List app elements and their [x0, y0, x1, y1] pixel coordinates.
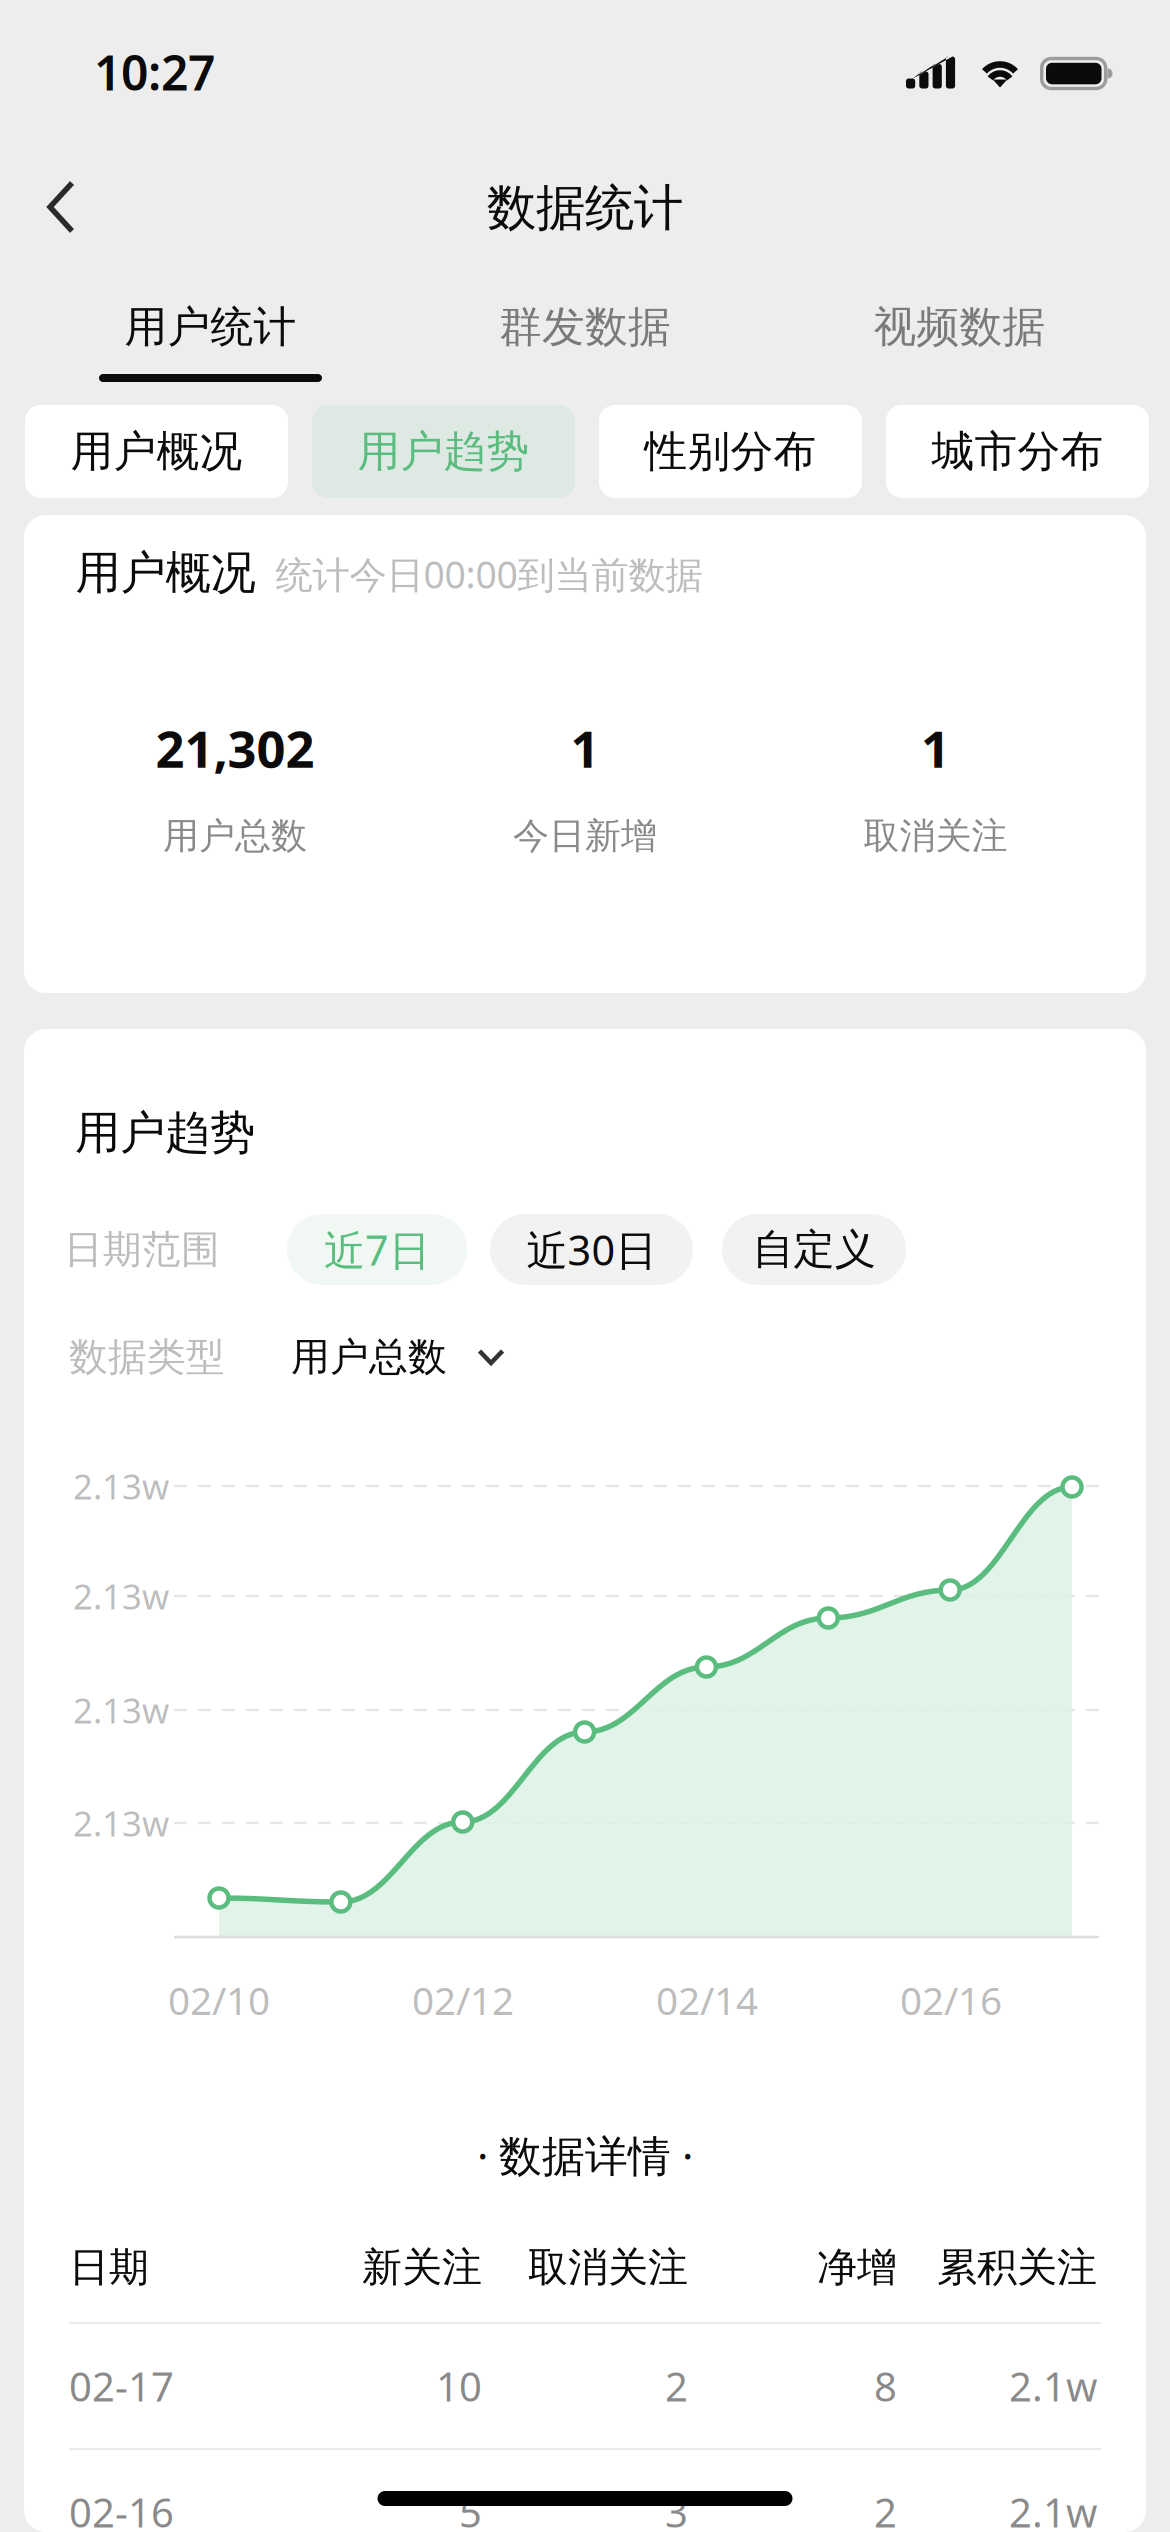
staticText: 性别分布: [644, 425, 816, 478]
staticText: 净增: [817, 2243, 897, 2292]
staticText: 2.1w: [1009, 2359, 1097, 2412]
button[interactable]: 用户总数: [291, 1329, 505, 1385]
staticText: 2.1w: [1009, 2485, 1097, 2532]
staticText: 02-17: [69, 2359, 174, 2412]
staticText: 2.13w: [73, 1800, 169, 1846]
staticText: 用户趋势: [75, 1105, 255, 1161]
staticText: 城市分布: [931, 425, 1103, 478]
staticText: 21,302: [155, 714, 314, 782]
staticText: 取消关注: [863, 814, 1007, 858]
staticText: 近30日: [526, 1222, 656, 1277]
staticText: 2.13w: [73, 1573, 169, 1619]
staticText: 1: [921, 714, 950, 782]
staticText: 3: [665, 2485, 688, 2532]
staticText: 日期: [69, 2243, 149, 2292]
staticText: 10: [436, 2359, 482, 2412]
button[interactable]: Back: [0, 144, 110, 256]
button[interactable]: 性别分布: [599, 405, 862, 498]
button[interactable]: 自定义: [722, 1214, 906, 1285]
staticText: 用户趋势: [357, 425, 529, 478]
staticText: 10:27: [94, 40, 215, 104]
staticText: 2: [665, 2359, 688, 2412]
staticText: 02/12: [412, 1974, 514, 2026]
staticText: 日期范围: [64, 1226, 220, 1273]
button[interactable]: 用户概况: [25, 405, 288, 498]
button[interactable]: 群发数据: [421, 256, 749, 400]
staticText: 群发数据: [499, 301, 671, 353]
staticText: 用户统计: [124, 301, 296, 353]
staticText: 统计今日00:00到当前数据: [275, 549, 702, 599]
button[interactable]: 用户趋势: [312, 405, 575, 498]
staticText: 近7日: [324, 1222, 430, 1277]
button[interactable]: 用户统计: [0, 256, 421, 400]
button[interactable]: 近30日: [490, 1214, 693, 1285]
staticText: 用户概况: [75, 545, 255, 601]
staticText: 用户概况: [70, 425, 242, 478]
staticText: 02/14: [656, 1974, 758, 2026]
staticText: 02/16: [900, 1974, 1002, 2026]
staticText: 02-16: [69, 2485, 174, 2532]
staticText: 视频数据: [873, 301, 1045, 353]
staticText: · 数据详情 ·: [477, 2127, 693, 2183]
staticText: 02/10: [168, 1974, 270, 2026]
staticText: 2: [874, 2485, 897, 2532]
staticText: 新关注: [362, 2243, 482, 2292]
staticText: 2.13w: [73, 1687, 169, 1733]
button[interactable]: 城市分布: [886, 405, 1149, 498]
button[interactable]: 视频数据: [749, 256, 1170, 400]
staticText: 1: [570, 714, 599, 782]
staticText: 数据类型: [69, 1333, 225, 1381]
staticText: 数据统计: [487, 178, 683, 238]
staticText: 累积关注: [937, 2243, 1097, 2292]
staticText: 5: [459, 2485, 482, 2532]
staticText: 用户总数: [163, 814, 307, 858]
staticText: 8: [874, 2359, 897, 2412]
staticText: 2.13w: [73, 1463, 169, 1509]
staticText: 取消关注: [528, 2243, 688, 2292]
button[interactable]: 近7日: [287, 1214, 467, 1285]
staticText: 自定义: [752, 1224, 875, 1275]
staticText: 用户总数: [291, 1333, 447, 1381]
staticText: 今日新增: [513, 814, 657, 858]
